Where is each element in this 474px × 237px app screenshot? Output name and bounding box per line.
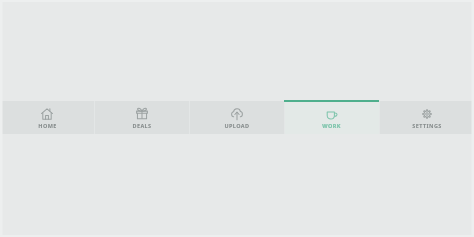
button[interactable]: UPLOAD: [189, 101, 284, 134]
staticText: WORK: [322, 122, 341, 129]
staticText: SETTINGS: [412, 122, 442, 129]
button[interactable]: SETTINGS: [379, 101, 474, 134]
staticText: UPLOAD: [224, 122, 250, 129]
button[interactable]: WORK: [284, 101, 379, 134]
button[interactable]: DEALS: [94, 101, 189, 134]
button[interactable]: HOME: [0, 101, 94, 134]
staticText: HOME: [38, 122, 57, 129]
staticText: DEALS: [132, 122, 152, 129]
